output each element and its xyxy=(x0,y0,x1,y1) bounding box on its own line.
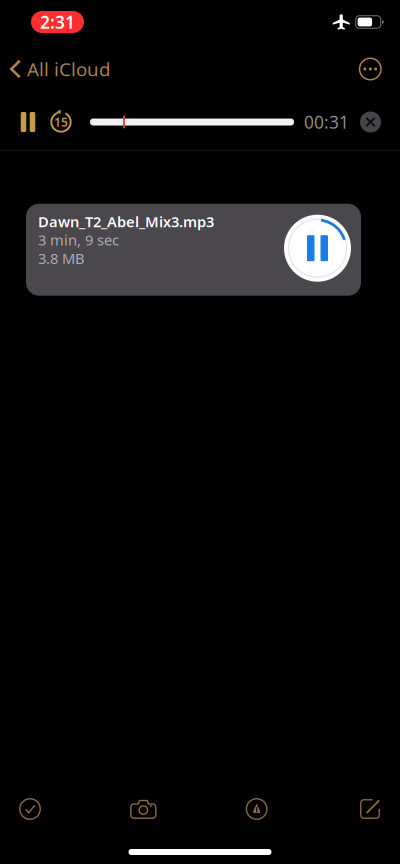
button[interactable]: Markup xyxy=(235,787,279,831)
staticText: 3.8 MB xyxy=(38,249,85,268)
button[interactable]: More options xyxy=(348,49,392,89)
staticText: 00:31 xyxy=(304,110,349,133)
button[interactable]: Go back 15 seconds xyxy=(50,109,72,135)
button[interactable]: Close player xyxy=(360,111,381,132)
staticText: Dawn_T2_Abel_Mix3.mp3 xyxy=(38,212,214,231)
staticText: All iCloud xyxy=(27,57,110,81)
staticText: 15 xyxy=(54,114,68,130)
button[interactable]: Select notes xyxy=(8,787,52,831)
staticText: 2:31 xyxy=(40,10,75,33)
button[interactable]: Dawn_T2_Abel_Mix3.mp3 xyxy=(26,204,361,296)
button[interactable]: Pause xyxy=(21,109,35,135)
staticText: 3 min, 9 sec xyxy=(38,230,119,250)
button[interactable]: All iCloud xyxy=(0,49,118,89)
button[interactable]: New note xyxy=(348,787,392,831)
button[interactable]: Take photo xyxy=(121,787,165,831)
